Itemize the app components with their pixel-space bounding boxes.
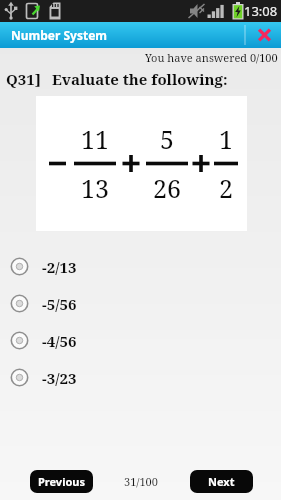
staticText: -3/23 xyxy=(42,368,77,388)
staticText: 5 xyxy=(146,122,188,156)
staticText: 1 xyxy=(214,122,238,156)
button[interactable]: -5/56 xyxy=(0,285,281,322)
button[interactable]: Previous xyxy=(30,470,93,493)
staticText: You have answered 0/100 xyxy=(145,50,278,65)
staticText: 2 xyxy=(214,171,238,205)
staticText: 13 xyxy=(74,171,116,205)
button[interactable]: Close xyxy=(244,22,281,48)
staticText: Previous xyxy=(38,474,85,489)
staticText: Number System xyxy=(11,27,108,43)
staticText: -2/13 xyxy=(42,257,77,277)
button[interactable]: -2/13 xyxy=(0,248,281,285)
staticText: 26 xyxy=(146,171,188,205)
staticText: Q31] xyxy=(6,69,41,89)
staticText: 13:08 xyxy=(244,2,278,20)
button[interactable]: -3/23 xyxy=(0,359,281,396)
staticText: -5/56 xyxy=(42,294,77,314)
button[interactable]: -4/56 xyxy=(0,322,281,359)
staticText: -4/56 xyxy=(42,331,77,351)
staticText: 11 xyxy=(74,122,116,156)
staticText: 31/100 xyxy=(124,474,158,489)
staticText: Evaluate the following: xyxy=(52,69,228,89)
staticText: Next xyxy=(208,474,235,489)
button[interactable]: Next xyxy=(190,470,253,493)
